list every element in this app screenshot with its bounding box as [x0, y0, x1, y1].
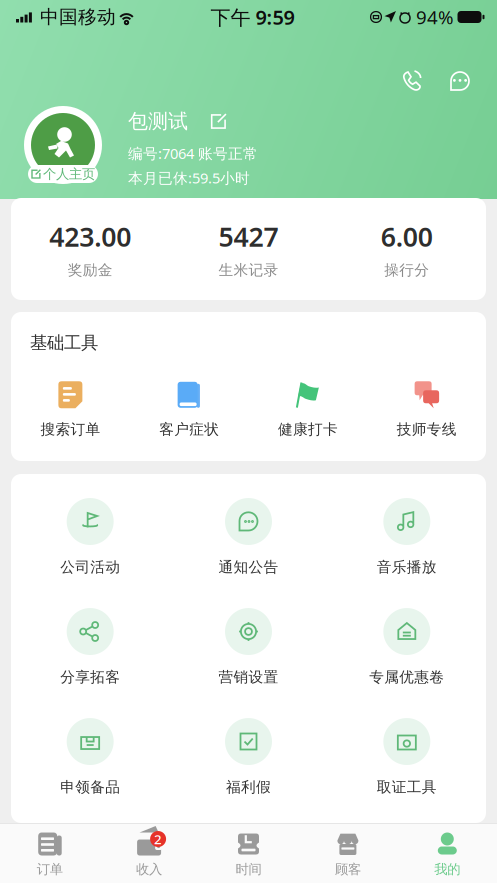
staticText: 分享拓客	[60, 668, 120, 686]
button[interactable]: 个人主页	[28, 165, 98, 183]
button[interactable]: 我的	[398, 832, 497, 877]
staticText: 健康打卡	[278, 420, 338, 438]
staticText: 包测试	[128, 109, 188, 134]
staticText: 通知公告	[218, 558, 278, 576]
button[interactable]: 公司活动	[11, 498, 169, 576]
staticText: 奖励金	[68, 261, 113, 279]
button[interactable]: 福利假	[169, 718, 328, 796]
staticText: 收入	[136, 861, 162, 877]
staticText: 基础工具	[30, 332, 98, 353]
staticText: 操行分	[384, 261, 429, 279]
button[interactable]: 搜索订单	[11, 381, 130, 438]
button[interactable]: Edit profile	[210, 113, 227, 130]
staticText: 客户症状	[159, 420, 219, 438]
button[interactable]: 音乐播放	[328, 498, 486, 576]
staticText: 申领备品	[60, 778, 120, 796]
button[interactable]: 时间	[199, 832, 298, 877]
staticText: 时间	[235, 861, 261, 877]
button[interactable]: 通知公告	[169, 498, 328, 576]
button[interactable]: 取证工具	[328, 718, 486, 796]
staticText: 我的	[434, 861, 460, 877]
staticText: 专属优惠卷	[369, 668, 444, 686]
button[interactable]: 顾客	[298, 832, 398, 877]
button[interactable]: 专属优惠卷	[328, 608, 486, 686]
staticText: 福利假	[226, 778, 271, 796]
staticText: 2	[154, 830, 162, 848]
button[interactable]: 客户症状	[130, 381, 249, 438]
button[interactable]: 健康打卡	[248, 381, 367, 438]
staticText: 搜索订单	[40, 420, 100, 438]
staticText: 取证工具	[377, 778, 437, 796]
button[interactable]: 订单	[0, 832, 99, 877]
button[interactable]: 技师专线	[367, 381, 486, 438]
staticText: 中国移动	[34, 5, 116, 28]
staticText: 营销设置	[218, 668, 278, 686]
button[interactable]: Call	[395, 64, 429, 98]
button[interactable]: 营销设置	[169, 608, 328, 686]
button[interactable]: 2	[99, 832, 199, 877]
staticText: 订单	[37, 861, 63, 877]
staticText: 6.00	[381, 219, 433, 254]
staticText: 个人主页	[43, 166, 95, 182]
staticText: 技师专线	[397, 420, 457, 438]
staticText: 生米记录	[218, 261, 278, 279]
staticText: 423.00	[49, 219, 131, 254]
button[interactable]: Messages	[443, 64, 477, 98]
staticText: 下午 9:59	[210, 4, 294, 30]
staticText: 编号:7064 账号正常	[128, 144, 258, 163]
staticText: 本月已休:59.5小时	[128, 168, 250, 187]
staticText: 5427	[218, 219, 278, 254]
button[interactable]: 分享拓客	[11, 608, 169, 686]
button[interactable]: 申领备品	[11, 718, 169, 796]
staticText: 音乐播放	[377, 558, 437, 576]
staticText: 顾客	[335, 861, 361, 877]
staticText: 公司活动	[60, 558, 120, 576]
staticText: 94%	[411, 5, 454, 29]
